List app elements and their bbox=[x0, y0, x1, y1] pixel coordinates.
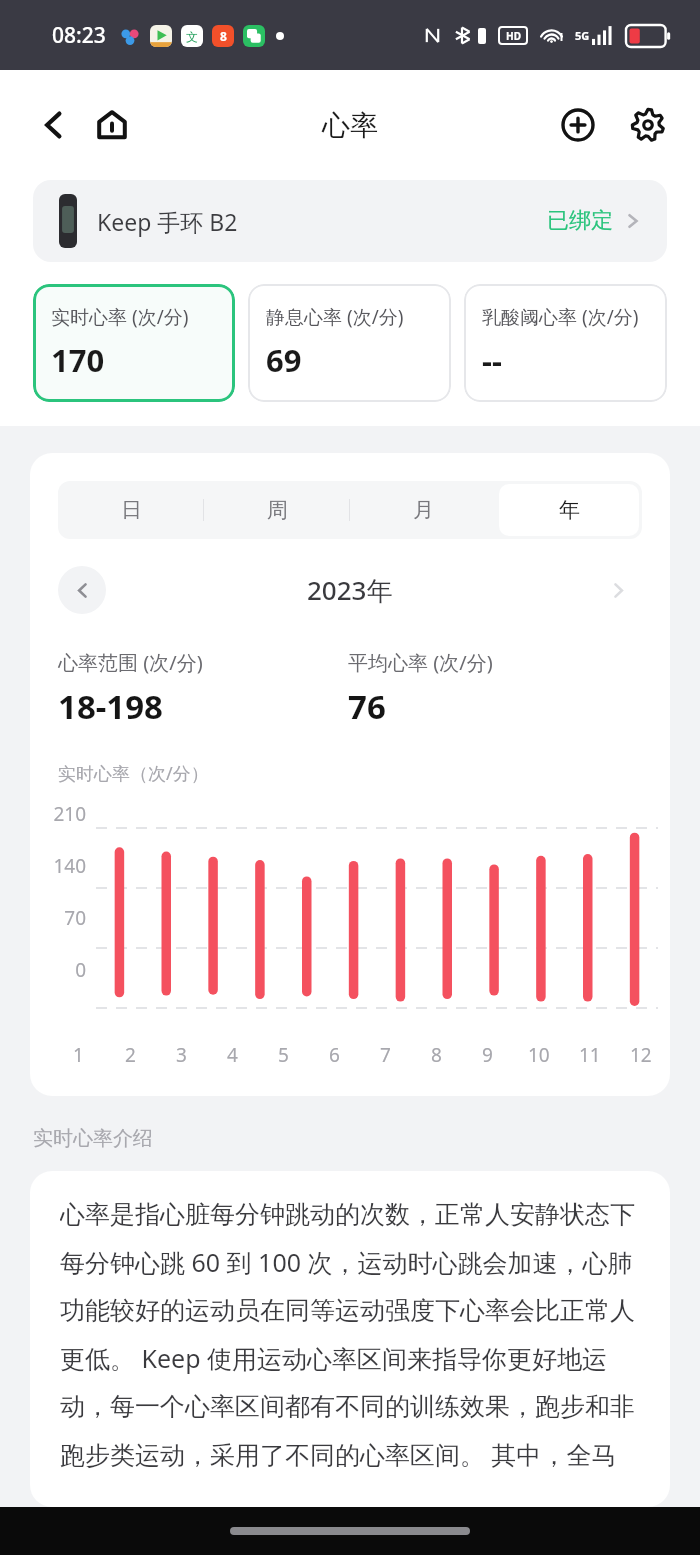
staticText: 12 bbox=[630, 1042, 652, 1068]
staticText: 日 bbox=[121, 497, 142, 523]
button[interactable]: 乳酸阈心率 (次/分) bbox=[464, 284, 667, 402]
button[interactable]: Keep 手环 B2 bbox=[33, 180, 667, 262]
button[interactable]: Back bbox=[30, 101, 78, 149]
button[interactable]: 静息心率 (次/分) bbox=[248, 284, 451, 402]
staticText: 9 bbox=[482, 1042, 493, 1068]
staticText: 心率是指心脏每分钟跳动的次数，正常人安静状态下每分钟心跳 60 到 100 次，… bbox=[60, 1199, 640, 1479]
button[interactable]: Settings bbox=[622, 99, 674, 151]
staticText: 76 bbox=[348, 684, 386, 729]
staticText: 08:23 bbox=[52, 21, 106, 50]
staticText: 年 bbox=[559, 497, 580, 523]
button[interactable]: 日 bbox=[61, 484, 201, 536]
staticText: 静息心率 (次/分) bbox=[266, 304, 404, 330]
staticText: 69 bbox=[266, 339, 302, 381]
staticText: 实时心率 (次/分) bbox=[51, 304, 189, 330]
staticText: 2 bbox=[125, 1042, 136, 1068]
button[interactable]: 月 bbox=[353, 484, 493, 536]
staticText: 11 bbox=[579, 1042, 601, 1068]
staticText: 7 bbox=[380, 1042, 391, 1068]
staticText: -- bbox=[482, 339, 502, 381]
staticText: 实时心率介绍 bbox=[33, 1126, 153, 1151]
staticText: Keep 手环 B2 bbox=[97, 206, 238, 237]
staticText: 平均心率 (次/分) bbox=[348, 649, 493, 676]
staticText: 5 bbox=[278, 1042, 289, 1068]
staticText: HD bbox=[506, 29, 521, 43]
staticText: 210 bbox=[30, 801, 86, 827]
staticText: 3 bbox=[176, 1042, 187, 1068]
button[interactable]: Next year bbox=[594, 566, 642, 614]
button[interactable]: 实时心率 (次/分) bbox=[33, 284, 235, 402]
staticText: 10 bbox=[528, 1042, 550, 1068]
staticText: 乳酸阈心率 (次/分) bbox=[482, 304, 639, 330]
staticText: 心率范围 (次/分) bbox=[58, 649, 203, 676]
button[interactable]: Home bbox=[88, 101, 136, 149]
staticText: 4 bbox=[227, 1042, 238, 1068]
button[interactable]: Add bbox=[552, 99, 604, 151]
staticText: 8 bbox=[431, 1042, 442, 1068]
staticText: 心率 bbox=[322, 108, 378, 143]
staticText: 0 bbox=[30, 957, 86, 983]
staticText: 6 bbox=[329, 1042, 340, 1068]
staticText: 文 bbox=[186, 29, 198, 44]
staticText: 1 bbox=[73, 1042, 84, 1068]
staticText: 实时心率（次/分） bbox=[58, 761, 209, 786]
staticText: 18-198 bbox=[58, 684, 163, 729]
button[interactable]: Previous year bbox=[58, 566, 106, 614]
staticText: 周 bbox=[267, 497, 288, 523]
staticText: 70 bbox=[30, 905, 86, 931]
button[interactable]: 周 bbox=[207, 484, 347, 536]
staticText: 8 bbox=[220, 28, 227, 44]
staticText: 5G bbox=[575, 28, 590, 43]
staticText: 170 bbox=[51, 339, 105, 381]
staticText: 140 bbox=[30, 853, 86, 879]
staticText: 2023年 bbox=[307, 572, 393, 608]
staticText: 已绑定 bbox=[547, 207, 613, 235]
staticText: 月 bbox=[413, 497, 434, 523]
button[interactable]: 年 bbox=[499, 484, 639, 536]
